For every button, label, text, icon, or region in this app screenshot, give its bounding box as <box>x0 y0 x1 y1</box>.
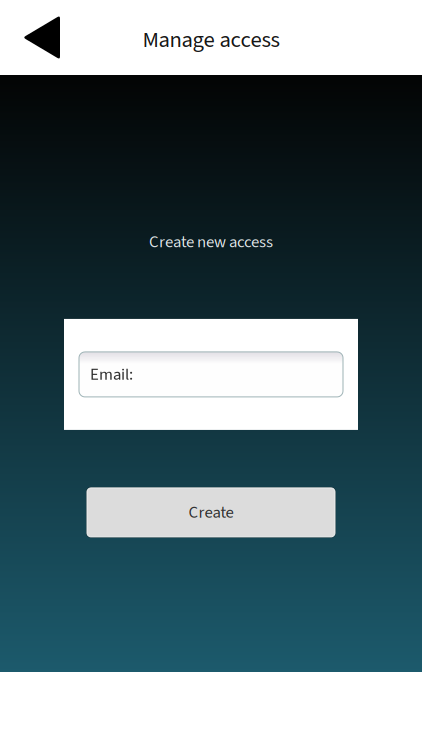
staticText: Manage access <box>142 24 279 56</box>
staticText: Email: <box>90 362 133 386</box>
button[interactable]: Create <box>86 487 336 538</box>
button[interactable]: Email: <box>79 352 343 397</box>
staticText: Create new access <box>149 230 273 254</box>
button[interactable]: Back <box>0 0 70 75</box>
staticText: Create <box>188 500 233 524</box>
